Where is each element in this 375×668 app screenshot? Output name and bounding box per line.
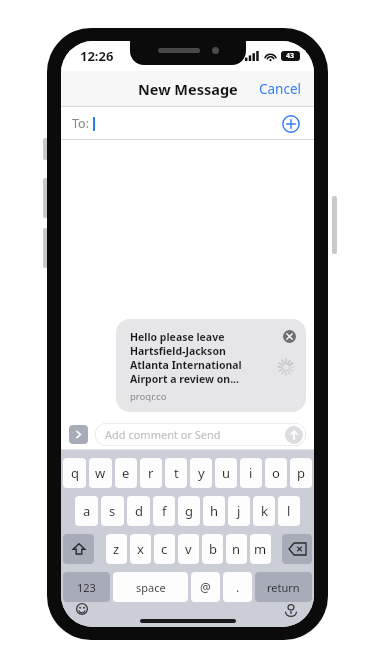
staticText: e bbox=[122, 464, 130, 482]
staticText: q bbox=[71, 464, 79, 482]
button[interactable]: Add comment or Send bbox=[95, 423, 306, 446]
staticText: return bbox=[267, 580, 300, 595]
button[interactable]: c bbox=[154, 534, 175, 564]
button[interactable]: k bbox=[253, 496, 275, 526]
staticText: . bbox=[236, 579, 240, 595]
button[interactable]: t bbox=[165, 458, 187, 488]
staticText: Cancel bbox=[259, 80, 302, 98]
staticText: c bbox=[161, 540, 168, 558]
button[interactable]: e bbox=[115, 458, 137, 488]
staticText: v bbox=[185, 540, 192, 558]
button[interactable]: x bbox=[130, 534, 151, 564]
staticText: y bbox=[198, 464, 205, 482]
staticText: b bbox=[209, 540, 217, 558]
button[interactable]: Hello please leave Hartsfield-Jackson At… bbox=[116, 319, 306, 412]
button[interactable]: Add contact bbox=[278, 111, 304, 137]
button[interactable]: s bbox=[101, 496, 124, 526]
staticText: t bbox=[174, 464, 179, 482]
button[interactable]: a bbox=[75, 496, 98, 526]
button[interactable]: Cancel bbox=[247, 74, 314, 104]
button[interactable]: h bbox=[203, 496, 225, 526]
button[interactable]: Send bbox=[285, 426, 303, 444]
staticText: Add comment or Send bbox=[105, 427, 221, 442]
button[interactable]: space bbox=[113, 572, 188, 602]
button[interactable]: q bbox=[63, 458, 86, 488]
button[interactable]: Remove attachment bbox=[283, 330, 296, 343]
staticText: 43 bbox=[286, 51, 295, 61]
staticText: n bbox=[232, 540, 241, 558]
staticText: p bbox=[297, 464, 305, 482]
staticText: proqr.co bbox=[130, 390, 167, 403]
button[interactable]: i bbox=[240, 458, 262, 488]
button[interactable]: 123 bbox=[63, 572, 110, 602]
button[interactable]: To: bbox=[61, 107, 314, 140]
staticText: w bbox=[95, 464, 106, 482]
staticText: To: bbox=[72, 115, 89, 132]
staticText: m bbox=[254, 540, 267, 558]
button[interactable]: u bbox=[215, 458, 237, 488]
staticText: a bbox=[83, 502, 91, 520]
staticText: @ bbox=[200, 579, 211, 595]
button[interactable]: d bbox=[127, 496, 150, 526]
button[interactable]: v bbox=[178, 534, 199, 564]
button[interactable]: Backspace bbox=[282, 534, 312, 564]
button[interactable]: f bbox=[153, 496, 175, 526]
staticText: i bbox=[249, 464, 253, 482]
button[interactable]: n bbox=[226, 534, 247, 564]
staticText: u bbox=[222, 464, 231, 482]
button[interactable]: Dictate bbox=[281, 603, 301, 615]
button[interactable]: Emoji bbox=[72, 603, 92, 615]
button[interactable]: p bbox=[290, 458, 312, 488]
button[interactable]: m bbox=[250, 534, 271, 564]
button[interactable]: w bbox=[89, 458, 112, 488]
button[interactable]: j bbox=[228, 496, 250, 526]
staticText: k bbox=[261, 502, 268, 520]
staticText: o bbox=[272, 464, 280, 482]
button[interactable]: return bbox=[255, 572, 312, 602]
staticText: 123 bbox=[77, 580, 96, 595]
staticText: j bbox=[237, 502, 241, 520]
staticText: h bbox=[210, 502, 219, 520]
staticText: Hello please leave Hartsfield-Jackson At… bbox=[130, 330, 256, 386]
button[interactable]: l bbox=[278, 496, 300, 526]
button[interactable]: Shift bbox=[63, 534, 94, 564]
staticText: x bbox=[137, 540, 144, 558]
button[interactable]: o bbox=[265, 458, 287, 488]
button[interactable]: @ bbox=[191, 572, 220, 602]
button[interactable]: z bbox=[106, 534, 127, 564]
staticText: New Message bbox=[138, 79, 238, 99]
button[interactable]: Expand apps bbox=[69, 425, 88, 444]
staticText: space bbox=[136, 580, 166, 595]
button[interactable]: g bbox=[178, 496, 200, 526]
button[interactable]: b bbox=[202, 534, 223, 564]
staticText: 12:26 bbox=[80, 47, 114, 65]
button[interactable]: . bbox=[223, 572, 252, 602]
button[interactable]: r bbox=[140, 458, 162, 488]
staticText: r bbox=[148, 464, 154, 482]
staticText: l bbox=[287, 502, 291, 520]
staticText: s bbox=[109, 502, 116, 520]
staticText: z bbox=[113, 540, 120, 558]
staticText: d bbox=[135, 502, 143, 520]
staticText: g bbox=[185, 502, 193, 520]
staticText: f bbox=[162, 502, 167, 520]
button[interactable]: y bbox=[190, 458, 212, 488]
